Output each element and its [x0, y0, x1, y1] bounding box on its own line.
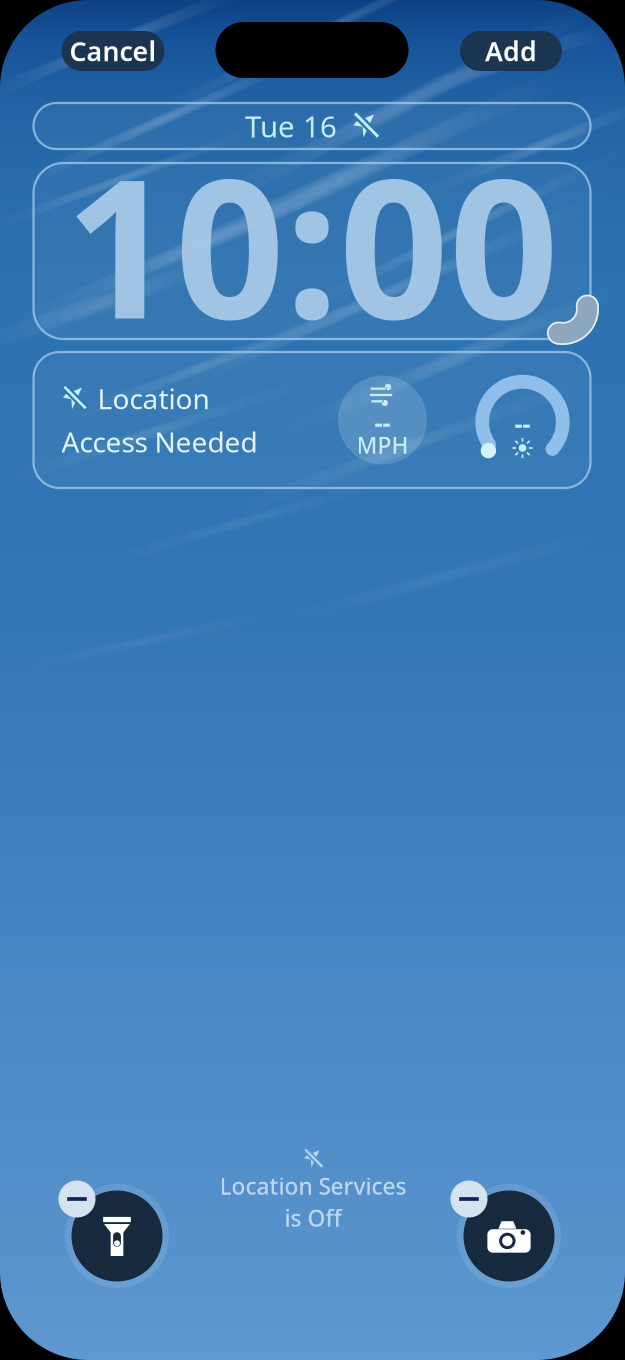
- staticText: --: [514, 406, 530, 440]
- staticText: Tue 16: [245, 106, 337, 145]
- button[interactable]: Remove Flashlight: [58, 1180, 95, 1217]
- button[interactable]: Location: [33, 352, 590, 488]
- staticText: Location Services: [219, 1171, 406, 1201]
- staticText: --: [374, 405, 390, 439]
- button[interactable]: Remove Camera: [450, 1180, 487, 1217]
- staticText: 10:00: [65, 116, 559, 371]
- staticText: Access Needed: [61, 423, 257, 460]
- button[interactable]: Cancel: [61, 31, 164, 71]
- staticText: is Off: [284, 1203, 341, 1233]
- button[interactable]: Camera: [463, 1190, 554, 1281]
- button[interactable]: 10:00: [33, 163, 590, 339]
- button[interactable]: Tue 16: [33, 103, 590, 149]
- staticText: MPH: [356, 430, 408, 460]
- staticText: Add: [485, 33, 537, 69]
- button[interactable]: Add: [460, 31, 562, 71]
- staticText: Location: [97, 380, 209, 417]
- button[interactable]: Flashlight: [71, 1190, 162, 1281]
- staticText: Cancel: [69, 33, 156, 69]
